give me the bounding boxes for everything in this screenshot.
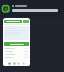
button[interactable]: Orders <box>17 62 20 66</box>
button[interactable] <box>12 5 62 12</box>
button[interactable] <box>23 20 29 23</box>
button[interactable]: App logo <box>2 5 10 13</box>
button[interactable] <box>5 48 28 49</box>
button[interactable]: Search <box>13 62 16 66</box>
button[interactable] <box>4 20 22 23</box>
button[interactable]: Home <box>3 18 30 66</box>
button[interactable]: Home <box>8 62 11 66</box>
button[interactable] <box>5 51 28 52</box>
button[interactable] <box>5 57 28 58</box>
button[interactable]: Profile <box>22 62 25 66</box>
button[interactable] <box>4 26 29 40</box>
button[interactable] <box>5 54 28 55</box>
button[interactable] <box>4 42 29 46</box>
